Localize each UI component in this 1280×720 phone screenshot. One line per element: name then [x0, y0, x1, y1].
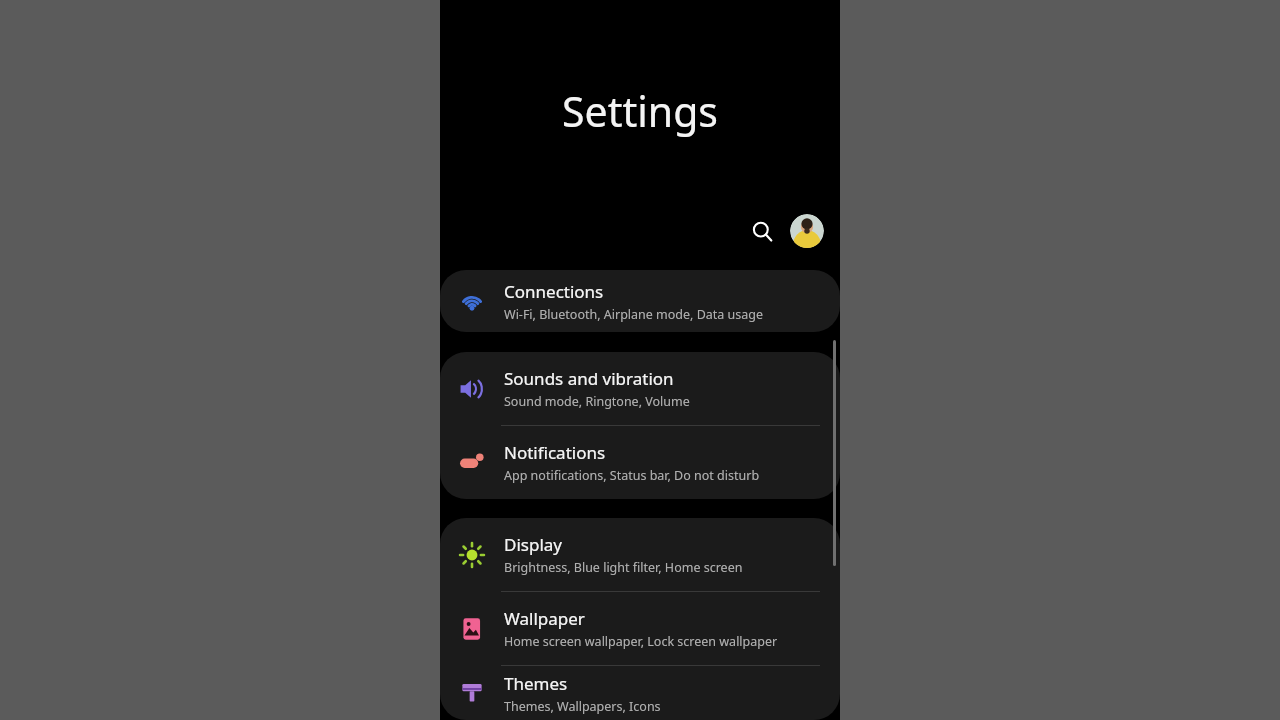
button[interactable]: Search settings — [744, 213, 780, 249]
staticText: Themes — [504, 672, 568, 695]
button[interactable]: Display — [440, 518, 840, 591]
staticText: Home screen wallpaper, Lock screen wallp… — [504, 633, 778, 650]
button[interactable]: Connections — [440, 270, 840, 332]
button[interactable]: Notifications — [440, 426, 840, 499]
staticText: Themes, Wallpapers, Icons — [504, 698, 661, 715]
button[interactable]: Sounds and vibration — [440, 352, 840, 425]
staticText: Connections — [504, 280, 604, 303]
staticText: Wi-Fi, Bluetooth, Airplane mode, Data us… — [504, 306, 764, 323]
staticText: Settings — [440, 83, 840, 139]
button[interactable]: Themes — [440, 666, 840, 720]
staticText: Brightness, Blue light filter, Home scre… — [504, 559, 743, 576]
staticText: Sounds and vibration — [504, 367, 674, 390]
button[interactable]: Samsung account profile — [790, 214, 824, 248]
button[interactable]: Wallpaper — [440, 592, 840, 665]
staticText: Wallpaper — [504, 607, 585, 630]
staticText: Sound mode, Ringtone, Volume — [504, 393, 690, 410]
staticText: App notifications, Status bar, Do not di… — [504, 467, 760, 484]
staticText: Notifications — [504, 441, 606, 464]
staticText: Display — [504, 533, 562, 556]
